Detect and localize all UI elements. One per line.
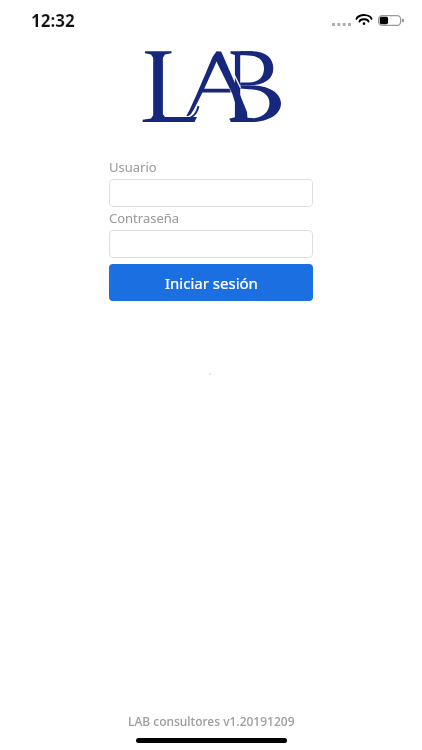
staticText: 12:32 <box>31 9 75 32</box>
staticText: Usuario <box>109 158 157 176</box>
staticText: Contraseña <box>109 209 180 227</box>
button[interactable]: Usuario <box>109 179 313 207</box>
button[interactable]: Contraseña <box>109 230 313 258</box>
staticText: Iniciar sesión <box>165 273 258 293</box>
button[interactable]: Iniciar sesión <box>109 264 313 301</box>
staticText: LAB consultores v1.20191209 <box>128 713 295 729</box>
